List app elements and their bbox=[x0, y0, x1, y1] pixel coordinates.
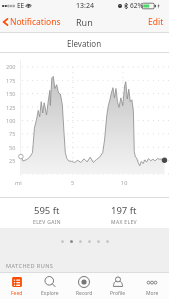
staticText: 13:24 bbox=[76, 1, 94, 11]
staticText: 175 bbox=[6, 77, 16, 84]
staticText: Elevation bbox=[67, 38, 102, 49]
staticText: Run bbox=[76, 16, 93, 28]
staticText: 150 bbox=[6, 90, 16, 97]
staticText: 197 ft bbox=[111, 204, 137, 217]
staticText: 100 bbox=[6, 117, 16, 124]
staticText: 595 ft bbox=[34, 204, 60, 217]
staticText: MATCHED RUNS bbox=[6, 262, 54, 270]
staticText: 75 bbox=[9, 130, 16, 137]
staticText: EE bbox=[17, 1, 25, 10]
button[interactable]: 197 ft bbox=[85, 198, 162, 228]
button[interactable]: Notifications bbox=[2, 12, 62, 32]
staticText: Profile bbox=[110, 290, 126, 297]
staticText: 25 bbox=[9, 157, 16, 164]
staticText: 62% bbox=[130, 1, 143, 10]
staticText: 50 bbox=[9, 144, 16, 151]
staticText: 10 bbox=[121, 179, 128, 186]
staticText: Notifications bbox=[10, 16, 61, 28]
staticText: MAX ELEV bbox=[111, 219, 137, 226]
staticText: mi bbox=[15, 179, 22, 186]
button[interactable]: 595 ft bbox=[8, 198, 85, 228]
staticText: Edit bbox=[148, 16, 164, 28]
staticText: Explore bbox=[41, 290, 59, 297]
staticText: 5 bbox=[71, 179, 75, 186]
staticText: Record bbox=[76, 290, 93, 297]
button[interactable]: More bbox=[135, 273, 169, 299]
button[interactable]: Record bbox=[67, 273, 101, 299]
staticText: Feed bbox=[11, 290, 23, 297]
button[interactable]: Profile bbox=[101, 273, 135, 299]
button[interactable]: Edit bbox=[143, 12, 169, 32]
staticText: 200 bbox=[6, 63, 16, 70]
staticText: 125 bbox=[6, 104, 16, 111]
staticText: ELEV GAIN bbox=[33, 219, 61, 226]
staticText: More bbox=[146, 290, 159, 297]
button[interactable]: Explore bbox=[33, 273, 67, 299]
button[interactable]: Feed bbox=[0, 273, 33, 299]
